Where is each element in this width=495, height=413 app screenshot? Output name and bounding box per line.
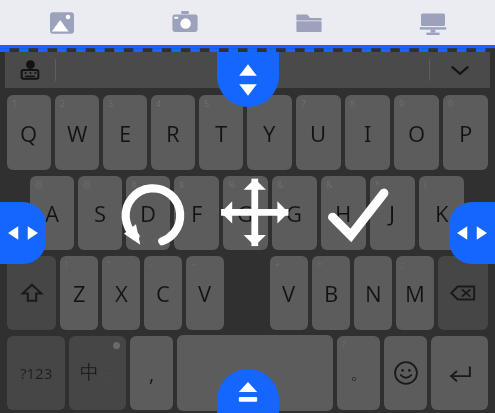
staticText: S: [94, 198, 107, 228]
staticText: B: [324, 278, 339, 308]
button[interactable]: 9: [394, 95, 439, 170]
staticText: J: [389, 198, 396, 228]
staticText: F: [191, 198, 203, 228]
button[interactable]: -: [144, 256, 182, 330]
staticText: %: [228, 178, 236, 190]
button[interactable]: (: [419, 176, 464, 250]
button[interactable]: Camera: [123, 0, 247, 45]
staticText: !: [65, 258, 68, 270]
button[interactable]: Move left: [0, 202, 46, 264]
button[interactable]: *: [370, 176, 415, 250]
button[interactable]: @: [78, 176, 122, 250]
staticText: E: [119, 118, 132, 148]
staticText: @: [35, 178, 44, 190]
button[interactable]: %: [223, 176, 268, 250]
button[interactable]: 4: [151, 95, 195, 170]
staticText: 9: [399, 97, 405, 109]
button[interactable]: 7: [296, 95, 341, 170]
staticText: K: [435, 198, 449, 228]
staticText: +: [275, 258, 281, 270]
button[interactable]: $: [174, 176, 219, 250]
button[interactable]: 2: [55, 95, 99, 170]
button[interactable]: 6: [247, 95, 292, 170]
staticText: 6: [252, 97, 258, 109]
staticText: #: [131, 178, 137, 190]
staticText: V: [282, 278, 296, 308]
button[interactable]: &: [272, 176, 317, 250]
button[interactable]: 8: [345, 95, 390, 170]
button[interactable]: Emoji: [384, 336, 427, 410]
button[interactable]: Shift: [7, 256, 56, 330]
button[interactable]: 3: [103, 95, 147, 170]
staticText: 5: [204, 97, 210, 109]
button[interactable]: Move right: [449, 202, 495, 264]
staticText: P: [459, 118, 473, 148]
staticText: R: [166, 118, 180, 148]
button[interactable]: Gallery: [0, 0, 123, 45]
staticText: H: [335, 198, 352, 228]
button[interactable]: +: [270, 256, 308, 330]
button[interactable]: ?123: [7, 336, 65, 410]
button[interactable]: Files: [247, 0, 371, 45]
staticText: &: [326, 178, 333, 190]
staticText: U: [310, 118, 327, 148]
staticText: ,: [149, 360, 155, 387]
staticText: I: [364, 118, 372, 148]
button[interactable]: !: [60, 256, 98, 330]
staticText: C: [156, 278, 170, 308]
button[interactable]: ;: [396, 256, 434, 330]
staticText: X: [115, 278, 128, 308]
button[interactable]: :: [354, 256, 392, 330]
button[interactable]: Space: [177, 335, 333, 411]
button[interactable]: ~: [186, 256, 224, 330]
button[interactable]: &: [321, 176, 366, 250]
staticText: ?123: [20, 363, 53, 383]
staticText: N: [365, 278, 382, 308]
button[interactable]: #: [126, 176, 170, 250]
staticText: *: [375, 178, 380, 190]
button[interactable]: Change language: [5, 52, 55, 88]
staticText: D: [140, 198, 157, 228]
staticText: 中: [80, 361, 99, 385]
staticText: Q: [20, 118, 38, 148]
button[interactable]: =: [312, 256, 350, 330]
staticText: Y: [263, 118, 276, 148]
button[interactable]: Desktop: [371, 0, 495, 45]
staticText: 3: [108, 97, 114, 109]
staticText: 1: [12, 97, 18, 109]
button[interactable]: Enter: [431, 336, 488, 410]
staticText: Z: [73, 278, 86, 308]
button[interactable]: 5: [199, 95, 243, 170]
staticText: ?: [342, 338, 346, 350]
staticText: =: [317, 258, 323, 270]
button[interactable]: @: [30, 176, 74, 250]
staticText: T: [215, 118, 228, 148]
button[interactable]: Resize keyboard: [217, 369, 279, 413]
button[interactable]: 0: [443, 95, 488, 170]
staticText: G: [237, 198, 254, 228]
button[interactable]: Resize vertically: [217, 52, 279, 107]
staticText: V: [198, 278, 212, 308]
staticText: 8: [350, 97, 356, 109]
staticText: &: [277, 178, 284, 190]
staticText: M: [405, 278, 425, 308]
button[interactable]: Collapse: [430, 52, 490, 88]
staticText: O: [408, 118, 426, 148]
button[interactable]: Backspace: [438, 256, 488, 330]
staticText: 。: [350, 362, 368, 385]
staticText: 2: [60, 97, 66, 109]
staticText: W: [67, 118, 88, 148]
button[interactable]: Switch Chinese English: [69, 336, 126, 410]
button[interactable]: ': [130, 336, 173, 410]
button[interactable]: ": [102, 256, 140, 330]
button[interactable]: ?: [337, 336, 380, 410]
staticText: 7: [301, 97, 307, 109]
button[interactable]: 1: [7, 95, 51, 170]
staticText: 4: [156, 97, 162, 109]
